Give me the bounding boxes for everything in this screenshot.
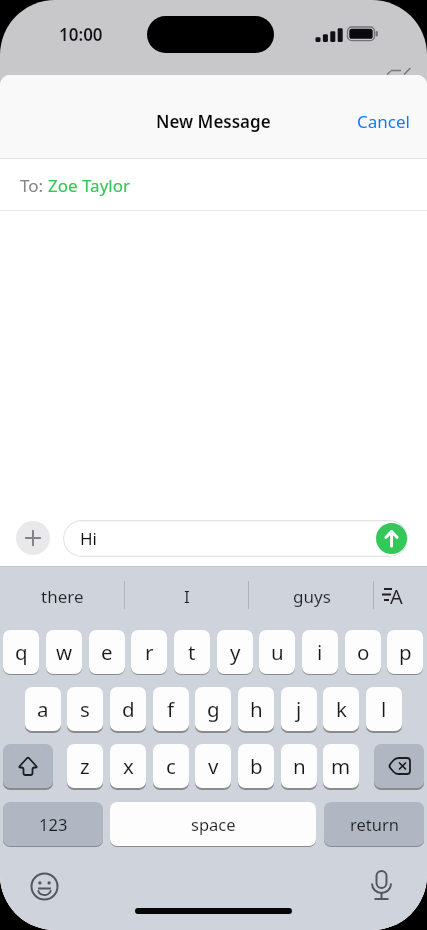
staticText: d — [122, 695, 135, 723]
staticText: g — [207, 695, 220, 723]
staticText: i — [317, 638, 323, 666]
button[interactable]: e — [89, 630, 125, 674]
staticText: space — [191, 813, 236, 835]
staticText: s — [80, 695, 90, 723]
staticText: y — [230, 638, 241, 666]
staticText: there — [41, 585, 84, 608]
staticText: I — [184, 585, 190, 608]
staticText: u — [271, 638, 284, 666]
button[interactable]: s — [67, 687, 103, 731]
button[interactable]: i — [302, 630, 338, 674]
button[interactable]: z — [67, 744, 103, 788]
staticText: 123 — [39, 813, 68, 835]
button[interactable] — [16, 521, 50, 555]
staticText: Zoe Taylor — [48, 174, 131, 197]
button[interactable] — [3, 744, 53, 788]
button[interactable]: a — [25, 687, 61, 731]
button[interactable]: o — [345, 630, 381, 674]
button[interactable]: w — [46, 630, 82, 674]
button[interactable]: there — [0, 570, 125, 623]
button[interactable]: g — [195, 687, 231, 731]
staticText: guys — [293, 585, 331, 608]
staticText: k — [336, 695, 347, 723]
button[interactable]: return — [324, 802, 424, 846]
button[interactable] — [374, 744, 424, 788]
button[interactable]: m — [323, 744, 359, 788]
staticText: To: — [20, 174, 48, 197]
button[interactable]: t — [174, 630, 210, 674]
button[interactable]: l — [366, 687, 402, 731]
staticText: r — [145, 638, 154, 666]
staticText: c — [166, 752, 176, 780]
button[interactable]: 123 — [3, 802, 103, 846]
button[interactable]: r — [131, 630, 167, 674]
staticText: t — [188, 638, 196, 666]
button[interactable]: Cancel — [290, 80, 410, 163]
button[interactable]: p — [387, 630, 423, 674]
staticText: w — [56, 638, 73, 666]
staticText: h — [250, 695, 263, 723]
button[interactable]: b — [238, 744, 274, 788]
staticText: x — [123, 752, 134, 780]
button[interactable]: u — [259, 630, 295, 674]
staticText: return — [350, 813, 399, 835]
staticText: q — [15, 638, 28, 666]
staticText: n — [293, 752, 306, 780]
button[interactable]: space — [110, 802, 316, 846]
staticText: z — [80, 752, 90, 780]
staticText: a — [37, 695, 49, 723]
staticText: p — [399, 638, 412, 666]
button[interactable]: k — [323, 687, 359, 731]
button[interactable]: y — [217, 630, 253, 674]
staticText: l — [381, 695, 387, 723]
staticText: New Message — [156, 110, 271, 133]
button[interactable]: v — [195, 744, 231, 788]
staticText: Cancel — [357, 110, 410, 133]
staticText: m — [331, 752, 351, 780]
button[interactable]: n — [281, 744, 317, 788]
button[interactable]: c — [153, 744, 189, 788]
staticText: b — [250, 752, 263, 780]
button[interactable]: To: — [0, 159, 427, 211]
button[interactable]: h — [238, 687, 274, 731]
staticText: Hi — [80, 527, 97, 550]
button[interactable]: d — [110, 687, 146, 731]
staticText: o — [357, 638, 370, 666]
staticText: e — [101, 638, 113, 666]
button[interactable] — [376, 523, 407, 554]
button[interactable]: guys — [249, 570, 374, 623]
button[interactable]: I — [125, 570, 249, 623]
staticText: v — [208, 752, 219, 780]
button[interactable]: j — [281, 687, 317, 731]
staticText: A — [390, 583, 403, 610]
button[interactable]: f — [153, 687, 189, 731]
staticText: 10:00 — [59, 23, 103, 46]
staticText: f — [167, 695, 175, 723]
button[interactable]: q — [3, 630, 39, 674]
staticText: j — [296, 695, 302, 723]
button[interactable]: x — [110, 744, 146, 788]
button[interactable]: Hi — [63, 520, 408, 557]
